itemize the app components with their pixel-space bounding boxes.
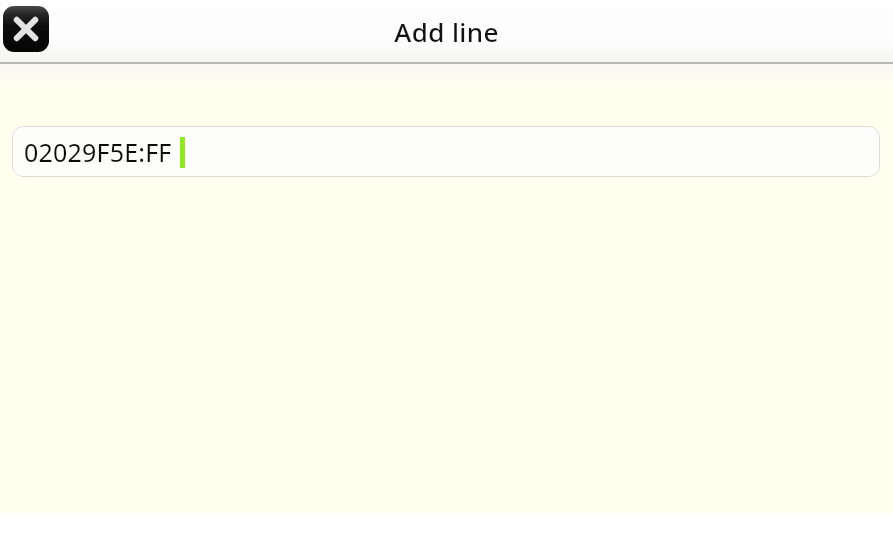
- staticText: 02029F5E:FF: [24, 135, 172, 169]
- staticText: Add line: [0, 14, 893, 49]
- button[interactable]: Close: [3, 6, 49, 52]
- button[interactable]: 02029F5E:FF: [12, 126, 880, 177]
